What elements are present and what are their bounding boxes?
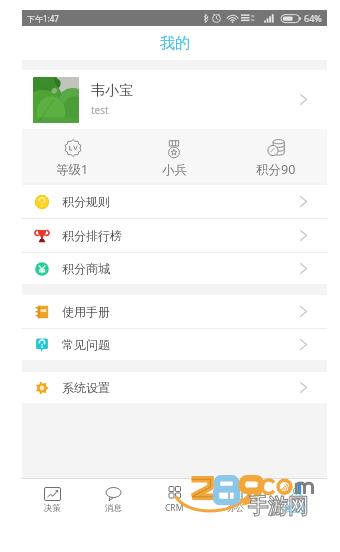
button[interactable]: 积分排行榜 [22,219,327,252]
staticText: 常见问题 [62,337,110,352]
button[interactable]: CRM [144,479,205,520]
button[interactable]: 常见问题 [22,329,327,360]
other: 打开 [300,306,307,317]
staticText: 决策 [44,503,61,514]
other: 打开 [300,339,307,350]
staticText: 系统设置 [62,380,110,395]
staticText: 小兵 [162,162,187,178]
button[interactable]: 小兵 [123,129,225,183]
button[interactable]: 积分规则 [22,185,327,218]
staticText: 积分规则 [62,194,110,209]
staticText: CRM [165,502,184,514]
other: 打开 [300,382,307,393]
button[interactable]: 系统设置 [22,372,327,403]
staticText: 韦小宝 [91,82,133,100]
button[interactable]: 积分90 [225,129,327,183]
other: 打开 [300,94,307,105]
staticText: 积分90 [256,161,296,178]
staticText: 等级1 [56,161,89,178]
staticText: 手游网 [248,494,308,519]
staticText: 手游网 [248,494,308,519]
other: 打开 [300,230,307,241]
staticText: 我上了 [284,504,308,514]
button[interactable]: 等级1 [22,129,123,183]
staticText: test [91,103,109,117]
staticText: 64% [304,12,322,24]
other: 打开 [300,196,307,207]
staticText: 下午1:47 [27,13,59,24]
button[interactable]: 使用手册 [22,295,327,328]
staticText: 我的 [288,503,305,514]
button[interactable]: 消息 [83,479,144,520]
button[interactable]: 积分商城 [22,253,327,284]
staticText: 办公 [227,503,244,514]
other: 打开 [300,263,307,274]
button[interactable]: 决策 [22,479,83,520]
staticText: 我的 [160,34,190,53]
staticText: 积分商城 [62,261,110,276]
staticText: 使用手册 [62,304,110,319]
staticText: 积分排行榜 [62,228,122,243]
staticText: 消息 [105,503,122,514]
button[interactable]: 韦小宝 [22,70,327,129]
button[interactable]: 办公 [205,479,266,520]
button[interactable]: 我的 [266,479,327,520]
